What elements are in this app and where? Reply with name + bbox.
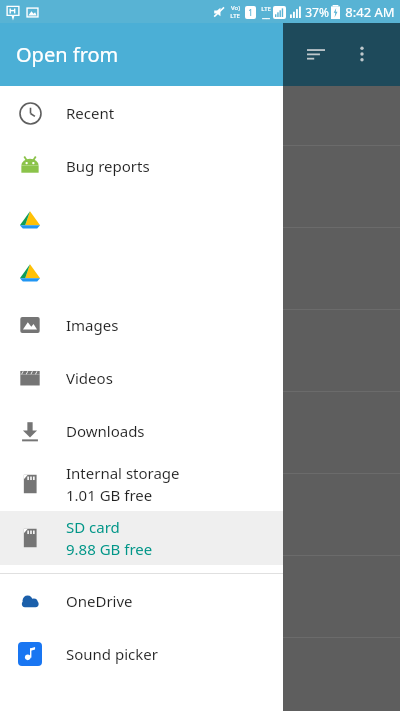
staticText: LTE: [230, 12, 240, 20]
button[interactable]: Internal storage: [0, 457, 283, 511]
staticText: Open from: [16, 41, 119, 68]
button[interactable]: [0, 245, 283, 298]
button[interactable]: Recent: [0, 86, 283, 139]
staticText: 9.88 GB free: [66, 539, 153, 559]
staticText: Recent: [66, 103, 115, 123]
staticText: Images: [66, 315, 119, 335]
staticText: Internal storage: [66, 463, 180, 483]
staticText: Sound picker: [66, 644, 158, 664]
staticText: 1.01 GB free: [66, 485, 153, 505]
staticText: Downloads: [66, 421, 145, 441]
button[interactable]: Images: [0, 298, 283, 351]
staticText: SD card: [66, 517, 120, 537]
button[interactable]: Sound picker: [0, 627, 283, 680]
button[interactable]: Videos: [0, 351, 283, 404]
button[interactable]: More options: [346, 38, 378, 70]
button[interactable]: OneDrive: [0, 574, 283, 627]
button[interactable]: Sort: [300, 38, 332, 70]
staticText: 37%: [305, 4, 329, 20]
staticText: Videos: [66, 368, 113, 388]
staticText: 1: [248, 7, 253, 18]
staticText: OneDrive: [66, 591, 133, 611]
staticText: ▁▁: [262, 13, 270, 19]
staticText: Bug reports: [66, 156, 150, 176]
button[interactable]: Bug reports: [0, 139, 283, 192]
staticText: LTE: [261, 5, 271, 13]
staticText: 8:42 AM: [345, 3, 395, 21]
button[interactable]: [0, 192, 283, 245]
button[interactable]: Downloads: [0, 404, 283, 457]
button[interactable]: SD card: [0, 511, 283, 565]
staticText: Vo): [231, 4, 240, 12]
